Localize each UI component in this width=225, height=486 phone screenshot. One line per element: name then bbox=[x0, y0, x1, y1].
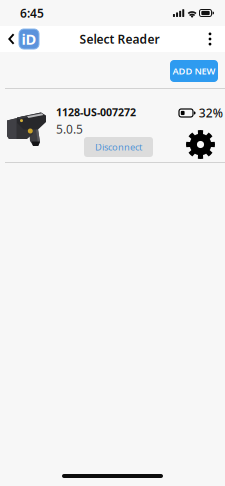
button[interactable]: More options bbox=[200, 26, 220, 52]
staticText: ADD NEW bbox=[172, 65, 215, 77]
staticText: iD bbox=[21, 29, 36, 49]
button[interactable]: Settings bbox=[186, 130, 215, 159]
staticText: 1128-US-007272 bbox=[56, 105, 136, 119]
staticText: 32% bbox=[199, 105, 223, 121]
staticText: 5.0.5 bbox=[56, 121, 83, 137]
staticText: Disconnect bbox=[95, 141, 142, 153]
button[interactable]: Back bbox=[3, 26, 39, 52]
staticText: Select Reader bbox=[79, 31, 159, 47]
button[interactable]: ADD NEW bbox=[170, 60, 218, 82]
button[interactable]: Disconnect bbox=[84, 137, 153, 157]
staticText: 6:45 bbox=[20, 5, 44, 21]
